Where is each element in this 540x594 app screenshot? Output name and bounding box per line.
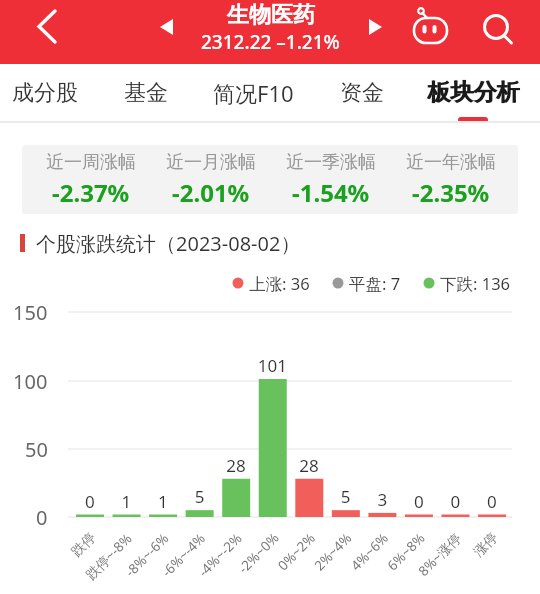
- staticText: 成分股: [12, 79, 78, 107]
- button[interactable]: [24, 2, 72, 50]
- staticText: 板块分析: [428, 78, 520, 107]
- staticText: 简况F10: [213, 78, 294, 108]
- staticText: -2.37%: [52, 176, 130, 209]
- button[interactable]: [406, 4, 454, 52]
- staticText: 近一年涨幅: [406, 151, 496, 174]
- staticText: -1.54%: [292, 176, 370, 209]
- staticText: -2.01%: [172, 176, 250, 209]
- staticText: 资金: [340, 79, 384, 107]
- staticText: 基金: [124, 79, 168, 107]
- button[interactable]: 基金: [86, 64, 206, 121]
- staticText: 近一周涨幅: [46, 151, 136, 174]
- button[interactable]: 资金: [302, 64, 422, 121]
- button[interactable]: 成分股: [0, 64, 105, 121]
- staticText: 2312.22 –1.21%: [201, 29, 340, 55]
- staticText: 近一季涨幅: [286, 151, 376, 174]
- staticText: 近一月涨幅: [166, 151, 256, 174]
- staticText: 个股涨跌统计（2023-08-02）: [36, 230, 301, 257]
- button[interactable]: [474, 4, 522, 52]
- staticText: 生物医药: [227, 1, 315, 29]
- button[interactable]: 板块分析: [413, 64, 533, 121]
- staticText: -2.35%: [412, 176, 490, 209]
- button[interactable]: 简况F10: [193, 64, 313, 121]
- staticText: 板块分析: [427, 78, 519, 107]
